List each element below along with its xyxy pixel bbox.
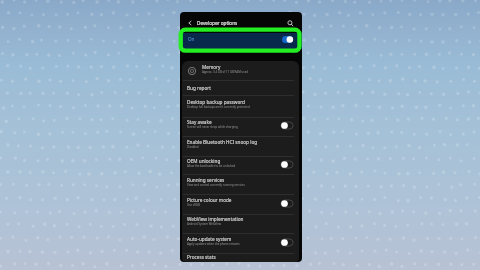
staticText: Allow the bootloader to be unlocked: [187, 164, 236, 168]
button[interactable]: Picture colour mode: [182, 195, 299, 215]
button[interactable]: Process stats: [182, 253, 299, 262]
button[interactable]: Desktop backup password: [182, 96, 299, 117]
button[interactable]: On: [180, 33, 302, 49]
staticText: Auto-update system: [187, 236, 232, 242]
staticText: Screen will never sleep while charging: [187, 125, 238, 129]
staticText: OEM unlocking: [187, 158, 221, 164]
button[interactable]: Bug report: [182, 81, 299, 96]
button[interactable]: Stay awake: [280, 120, 294, 130]
button[interactable]: Search: [284, 17, 296, 29]
staticText: Android System WebView: [187, 222, 221, 226]
staticText: Apply updates when the phone restarts: [187, 242, 240, 246]
button[interactable]: OEM unlocking: [280, 159, 294, 169]
staticText: Use sRGB: [187, 203, 200, 207]
staticText: Desktop full backups aren't currently pr…: [187, 105, 250, 109]
staticText: Memory: [202, 64, 221, 70]
staticText: View and control currently running servi…: [187, 183, 245, 187]
staticText: Disabled: [187, 145, 199, 149]
button[interactable]: WebView implementation: [182, 214, 299, 233]
staticText: Desktop backup password: [187, 99, 245, 105]
button[interactable]: Picture colour mode: [280, 198, 294, 208]
button[interactable]: Stay awake: [182, 117, 299, 137]
staticText: Enable Bluetooth HCI snoop log: [187, 139, 258, 145]
staticText: On: [188, 36, 195, 42]
button[interactable]: Auto-update system: [182, 234, 299, 254]
staticText: Approx. 3.4 GB of 11 GB RAM used: [202, 70, 248, 74]
staticText: WebView implementation: [187, 216, 244, 222]
button[interactable]: OEM unlocking: [182, 156, 299, 175]
staticText: Developer options: [197, 20, 238, 26]
staticText: Running services: [187, 177, 225, 183]
staticText: Bug report: [187, 85, 211, 91]
button[interactable]: Back: [184, 17, 195, 28]
button[interactable]: Running services: [182, 175, 299, 194]
button[interactable]: Auto-update system: [280, 237, 294, 247]
staticText: Stay awake: [187, 119, 212, 125]
staticText: Picture colour mode: [187, 197, 232, 203]
button[interactable]: Memory: [182, 61, 299, 81]
staticText: Process stats: [187, 254, 216, 260]
button[interactable]: Enable Bluetooth HCI snoop log: [182, 137, 299, 156]
